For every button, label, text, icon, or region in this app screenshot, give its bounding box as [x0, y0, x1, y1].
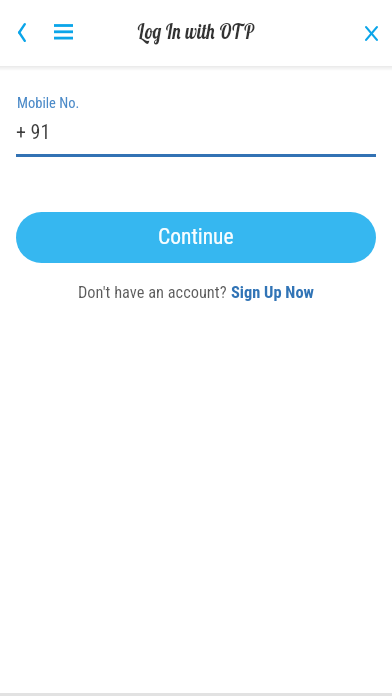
staticText: Don't have an account? [78, 283, 231, 302]
staticText: Sign Up Now [231, 283, 314, 302]
button[interactable]: Back [0, 7, 42, 59]
button[interactable]: Continue [16, 212, 376, 263]
staticText: Log In with OTP [137, 17, 254, 45]
staticText: + 91 [16, 120, 51, 143]
staticText: Continue [158, 224, 234, 249]
button[interactable]: Close [350, 7, 390, 59]
button[interactable]: Menu [42, 7, 82, 59]
button[interactable]: Sign Up Now [231, 283, 314, 302]
staticText: Mobile No. [17, 95, 80, 112]
